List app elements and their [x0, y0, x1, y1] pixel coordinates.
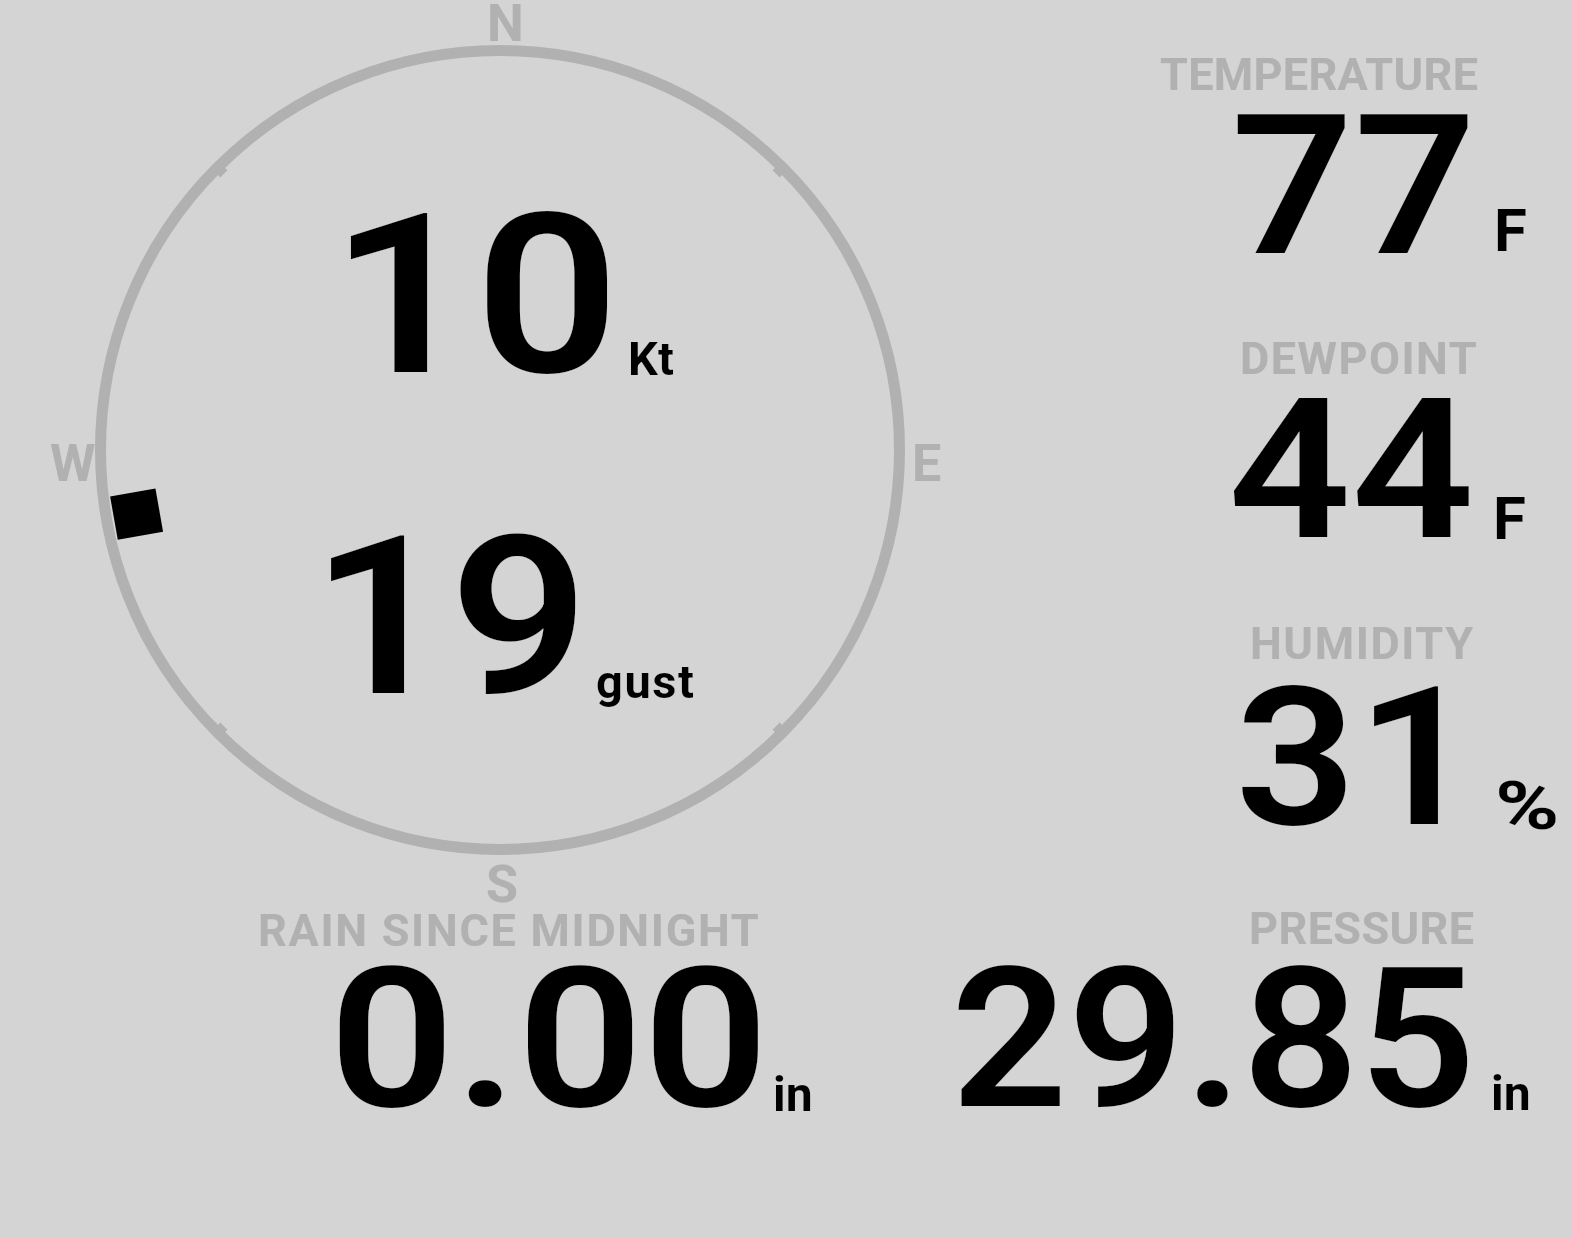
staticText: F: [1493, 483, 1526, 553]
staticText: 31: [1235, 645, 1478, 871]
staticText: gust: [596, 654, 696, 709]
button[interactable]: Rain since midnight 0.00 inches: [250, 895, 840, 1120]
staticText: E: [912, 433, 942, 494]
staticText: 0.00: [329, 926, 769, 1153]
staticText: RAIN SINCE MIDNIGHT: [258, 904, 761, 957]
staticText: 44: [1228, 357, 1475, 584]
button[interactable]: Wind 10 knots, gusting 19, from the west: [90, 40, 910, 860]
staticText: HUMIDITY: [1250, 617, 1475, 670]
staticText: W: [50, 433, 96, 494]
staticText: %: [1495, 767, 1560, 846]
staticText: TEMPERATURE: [1160, 48, 1479, 101]
staticText: Kt: [628, 331, 674, 386]
button[interactable]: Humidity 31 percent: [1150, 610, 1560, 835]
staticText: 29.85: [951, 926, 1476, 1153]
button[interactable]: Temperature 77 degrees Fahrenheit: [1150, 40, 1560, 270]
staticText: 77: [1231, 73, 1477, 300]
staticText: PRESSURE: [1249, 902, 1475, 955]
staticText: 19: [311, 488, 589, 747]
button[interactable]: Pressure 29.85 inches: [940, 895, 1560, 1120]
button[interactable]: Dewpoint 44 degrees Fahrenheit: [1150, 325, 1560, 550]
staticText: in: [773, 1066, 813, 1122]
staticText: F: [1494, 195, 1527, 265]
staticText: N: [487, 0, 524, 54]
staticText: DEWPOINT: [1240, 332, 1479, 385]
staticText: 10: [330, 166, 620, 426]
staticText: in: [1491, 1065, 1531, 1121]
staticText: S: [486, 854, 519, 915]
